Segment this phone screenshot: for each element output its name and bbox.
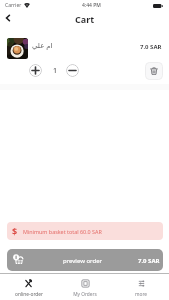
staticText: $ [12, 225, 18, 237]
staticText: Carrier [5, 2, 22, 9]
button[interactable]: preview order [7, 249, 163, 271]
staticText: 4:44 PM [82, 2, 101, 9]
staticText: Cart [75, 13, 95, 25]
button[interactable]: online-order [0, 274, 57, 300]
staticText: 1 [53, 66, 58, 76]
staticText: 7.0 SAR [140, 43, 162, 51]
button[interactable]: $ [7, 222, 163, 240]
staticText: My Orders [73, 291, 97, 298]
button[interactable]: Back [0, 10, 15, 25]
staticText: preview order [63, 257, 102, 265]
button[interactable]: more [113, 274, 169, 300]
staticText: more [135, 291, 147, 298]
staticText: online-order [15, 291, 43, 298]
button[interactable]: Delete item [145, 62, 163, 80]
button[interactable]: My Orders [57, 274, 113, 300]
staticText: Minimum basket total 60.0 SAR [23, 228, 102, 235]
staticText: 7.0 SAR [138, 257, 160, 265]
staticText: ام علي [32, 41, 53, 51]
button[interactable]: Increase quantity [29, 64, 42, 77]
button[interactable]: Decrease quantity [66, 64, 79, 77]
